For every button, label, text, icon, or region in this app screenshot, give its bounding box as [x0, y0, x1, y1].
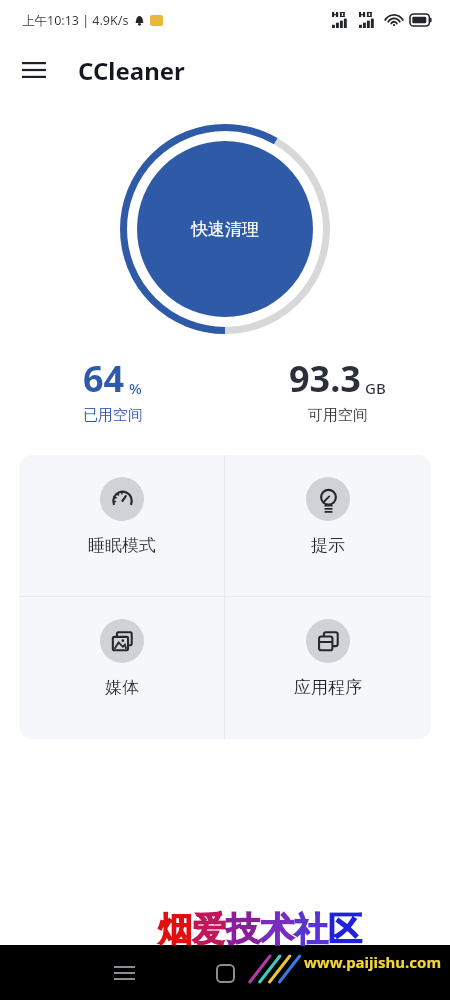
- staticText: 烟: [158, 908, 192, 951]
- staticText: 爱: [192, 908, 226, 951]
- staticText: CCleaner: [78, 54, 185, 87]
- button[interactable]: 应用程序: [225, 597, 431, 739]
- staticText: 社: [294, 908, 328, 951]
- button[interactable]: Quick Clean: [120, 124, 330, 334]
- staticText: 可用空间: [308, 406, 368, 425]
- button[interactable]: 睡眠模式: [19, 455, 224, 596]
- staticText: 应用程序: [294, 677, 362, 698]
- staticText: 快速清理: [191, 219, 259, 240]
- staticText: 媒体: [105, 677, 139, 698]
- button[interactable]: Menu: [102, 951, 146, 995]
- staticText: 术: [260, 908, 294, 951]
- staticText: GB: [365, 378, 386, 398]
- staticText: 提示: [311, 535, 345, 556]
- staticText: 已用空间: [83, 406, 143, 425]
- staticText: 64: [83, 354, 125, 403]
- button[interactable]: 媒体: [19, 597, 224, 739]
- staticText: 区: [328, 908, 362, 951]
- staticText: www.paijishu.com: [304, 952, 442, 972]
- staticText: 93.3: [289, 354, 361, 403]
- button[interactable]: Recents: [203, 951, 247, 995]
- staticText: 上午10:13 | 4.9K/s: [22, 12, 129, 29]
- staticText: %: [129, 378, 142, 398]
- button[interactable]: Menu: [12, 48, 56, 92]
- staticText: 睡眠模式: [88, 535, 156, 556]
- staticText: 技: [226, 908, 260, 951]
- button[interactable]: 提示: [225, 455, 431, 596]
